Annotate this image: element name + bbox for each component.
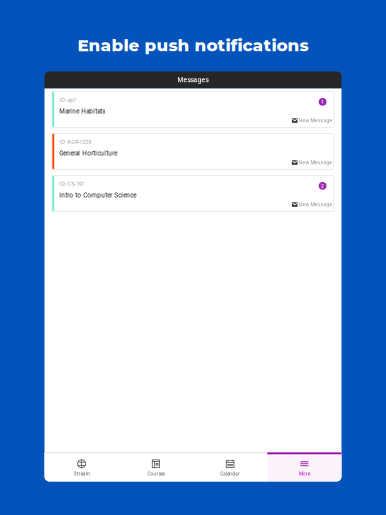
staticText: General Horticulture	[59, 149, 117, 157]
staticText: New Message	[298, 202, 332, 207]
button[interactable]: More	[267, 452, 341, 481]
button[interactable]: ID: ujo1	[52, 91, 334, 127]
staticText: New Message	[298, 160, 332, 165]
staticText: ID: ujo1	[59, 96, 77, 103]
staticText: Enable push notifications	[77, 35, 308, 55]
staticText: Courses	[147, 471, 164, 477]
button[interactable]: Calendar	[193, 452, 267, 481]
button[interactable]: Stream	[44, 452, 119, 481]
staticText: New Message	[298, 118, 332, 123]
staticText: Calendar	[220, 471, 240, 477]
button[interactable]: ID: AGR-I223	[52, 133, 334, 169]
staticText: 1	[321, 99, 324, 105]
staticText: Marine Habitats	[59, 107, 105, 115]
staticText: Intro to Computer Science	[59, 191, 136, 199]
staticText: 2	[321, 183, 324, 189]
staticText: Stream	[74, 471, 90, 477]
button[interactable]: Courses	[119, 452, 193, 481]
staticText: Messages	[177, 76, 208, 84]
button[interactable]: ID: CS-101	[52, 175, 334, 211]
staticText: ID: AGR-I223	[59, 138, 91, 145]
staticText: ID: CS-101	[59, 180, 85, 187]
staticText: More	[299, 471, 310, 477]
